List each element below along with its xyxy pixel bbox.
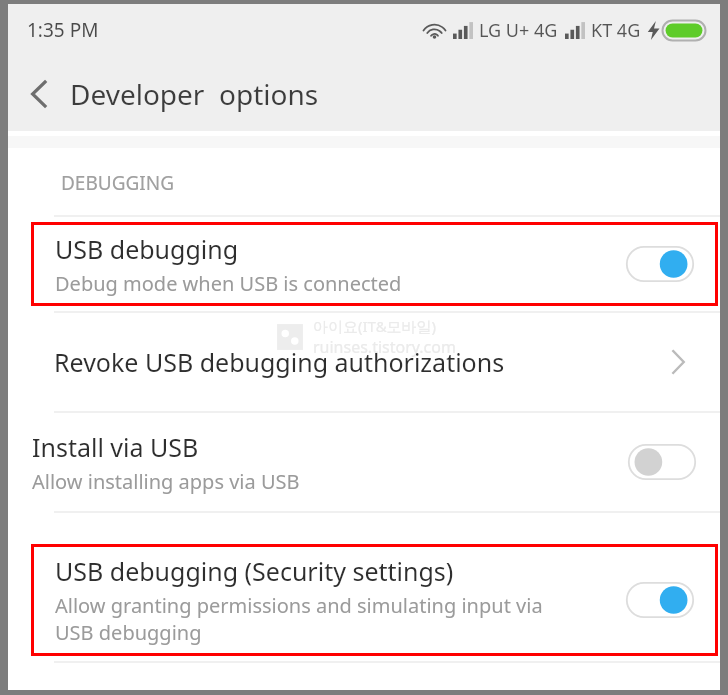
staticText: ruinses.tistory.com	[313, 336, 456, 358]
staticText: KT 4G	[591, 18, 641, 43]
staticText: Revoke USB debugging authorizations	[54, 345, 671, 379]
staticText: USB debugging (Security settings)	[55, 554, 454, 588]
button[interactable]: USB debugging	[31, 222, 718, 306]
button[interactable]: Back	[8, 56, 70, 131]
staticText: 1:35 PM	[27, 17, 99, 43]
button[interactable]: Toggle on	[626, 246, 694, 282]
staticText: 아이요(IT&모바일)	[313, 316, 437, 336]
staticText: Allow installing apps via USB	[32, 468, 300, 495]
staticText: DEBUGGING	[61, 170, 175, 196]
staticText: USB debugging	[55, 232, 239, 266]
button[interactable]: USB debugging (Security settings)	[31, 544, 718, 656]
staticText: Allow granting permissions and simulatin…	[55, 592, 543, 646]
button[interactable]: Install via USB	[8, 418, 720, 506]
staticText: LG U+ 4G	[479, 18, 558, 43]
staticText: Install via USB	[32, 430, 199, 464]
button[interactable]: Revoke USB debugging authorizations	[8, 318, 720, 406]
button[interactable]: Toggle off	[628, 444, 696, 480]
staticText: Debug mode when USB is connected	[55, 270, 402, 297]
button[interactable]: Toggle on	[626, 582, 694, 618]
staticText: Developer options	[70, 75, 319, 113]
